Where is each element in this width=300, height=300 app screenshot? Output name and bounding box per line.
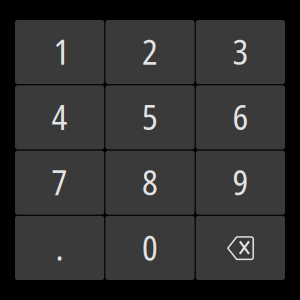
button[interactable]: 8	[105, 151, 195, 215]
button[interactable]: 6	[196, 85, 285, 149]
button[interactable]: 0	[105, 216, 195, 280]
staticText: .	[56, 224, 64, 271]
button[interactable]: 4	[15, 85, 104, 149]
staticText: 2	[142, 28, 158, 75]
button[interactable]: Delete	[196, 216, 285, 280]
button[interactable]: 7	[15, 151, 104, 215]
button[interactable]: 3	[196, 20, 285, 84]
staticText: 5	[142, 93, 158, 140]
staticText: 4	[52, 93, 68, 140]
staticText: 1	[54, 28, 70, 75]
button[interactable]: .	[15, 216, 104, 280]
staticText: 9	[232, 158, 248, 205]
button[interactable]: 1	[15, 20, 104, 84]
button[interactable]: 2	[105, 20, 195, 84]
staticText: 8	[142, 158, 158, 205]
staticText: 3	[232, 28, 248, 75]
button[interactable]: 9	[196, 151, 285, 215]
staticText: 0	[142, 224, 158, 271]
staticText: 6	[232, 93, 248, 140]
button[interactable]: 5	[105, 85, 195, 149]
staticText: 7	[52, 158, 68, 205]
